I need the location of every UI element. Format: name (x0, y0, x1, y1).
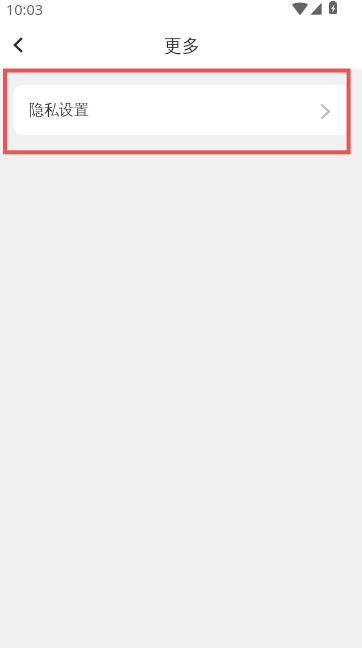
staticText: 更多 (164, 35, 200, 58)
button[interactable]: 隐私设置 (13, 85, 346, 135)
staticText: 隐私设置 (29, 101, 89, 120)
staticText: 10:03 (6, 0, 44, 18)
button[interactable]: Back (0, 23, 36, 67)
